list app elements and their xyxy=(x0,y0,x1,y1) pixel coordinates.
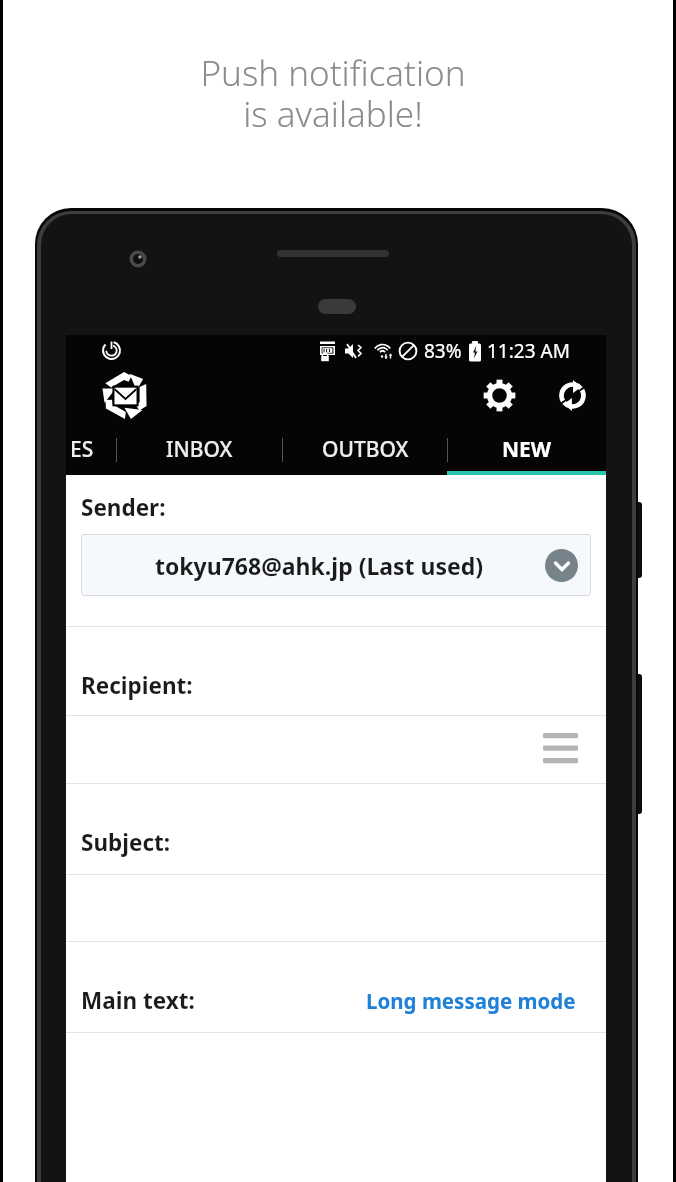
staticText: tokyu768@ahk.jp (Last used) xyxy=(155,550,484,581)
staticText: Sender: xyxy=(81,492,166,523)
button[interactable]: tokyu768@ahk.jp (Last used) xyxy=(81,534,591,596)
staticText: 83% xyxy=(424,338,462,364)
button[interactable]: ES xyxy=(66,424,116,475)
staticText: Main text: xyxy=(81,985,195,1016)
staticText: is available! xyxy=(243,90,423,138)
staticText: OUTBOX xyxy=(322,435,409,464)
button[interactable]: Refresh xyxy=(548,371,596,419)
button[interactable]: Pick recipient xyxy=(536,724,584,772)
button[interactable]: OUTBOX xyxy=(283,424,447,475)
staticText: Long message mode xyxy=(366,987,576,1015)
button[interactable]: Long message mode xyxy=(366,987,576,1015)
staticText: NEW xyxy=(502,435,552,464)
staticText: Push notification xyxy=(200,49,466,97)
staticText: INBOX xyxy=(166,435,233,464)
staticText: Recipient: xyxy=(81,670,193,701)
button[interactable]: Settings xyxy=(475,371,523,419)
staticText: Subject: xyxy=(81,827,171,858)
button[interactable]: INBOX xyxy=(117,424,282,475)
staticText: ES xyxy=(70,435,94,464)
staticText: 11:23 AM xyxy=(487,338,570,364)
other: Choose sender xyxy=(545,549,578,582)
button[interactable]: Mail app logo xyxy=(99,369,151,421)
button[interactable]: NEW xyxy=(448,424,606,475)
